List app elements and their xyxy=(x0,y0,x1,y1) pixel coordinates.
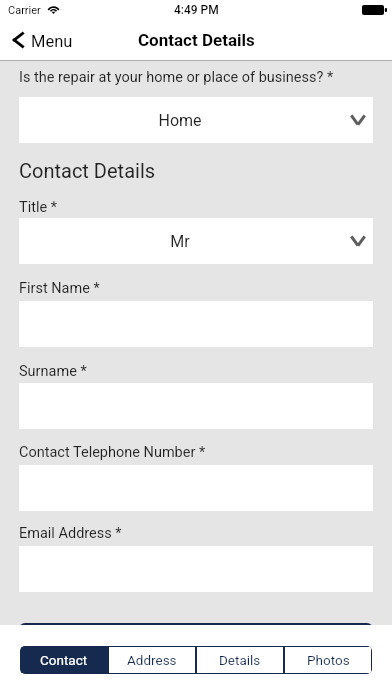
staticText: Home xyxy=(19,111,341,130)
staticText: 4:49 PM xyxy=(174,3,219,17)
staticText: Photos xyxy=(307,652,350,668)
button[interactable]: Details xyxy=(197,647,283,673)
staticText: Details xyxy=(219,652,261,668)
button[interactable]: Mr xyxy=(19,218,373,264)
staticText: Surname * xyxy=(19,363,87,380)
button[interactable]: Photos xyxy=(285,647,371,673)
staticText: Contact Details xyxy=(138,30,255,50)
staticText: Email Address * xyxy=(19,525,122,542)
staticText: Menu xyxy=(31,32,73,51)
staticText: Address xyxy=(127,652,177,668)
button[interactable]: Menu xyxy=(12,32,73,51)
button[interactable]: Address xyxy=(109,647,195,673)
staticText: Title * xyxy=(19,199,57,216)
staticText: Is the repair at your home or place of b… xyxy=(19,69,334,86)
button[interactable]: Home xyxy=(19,97,373,143)
staticText: Contact Details xyxy=(19,159,156,182)
staticText: Carrier xyxy=(8,4,41,17)
staticText: Next xyxy=(180,636,212,654)
staticText: First Name * xyxy=(19,280,100,297)
staticText: Contact Telephone Number * xyxy=(19,444,206,461)
staticText: Contact xyxy=(40,652,88,668)
button[interactable]: Next xyxy=(19,623,373,667)
staticText: Mr xyxy=(19,232,341,251)
button[interactable]: Contact xyxy=(21,647,107,673)
